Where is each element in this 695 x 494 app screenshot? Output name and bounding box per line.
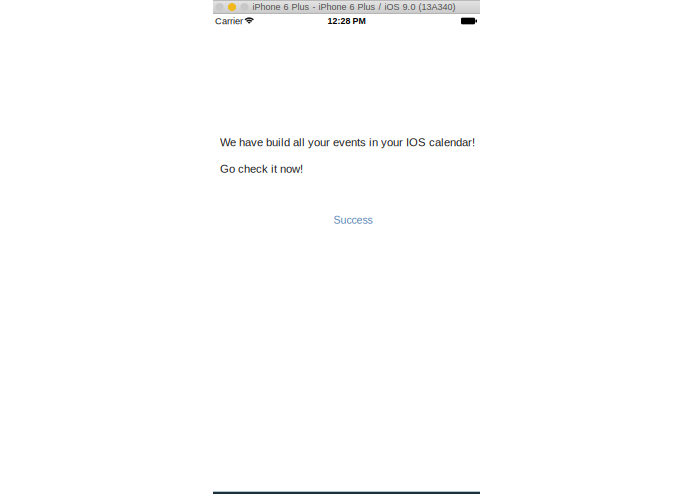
staticText: We have build all your events in your IO… [220, 136, 475, 149]
staticText: Carrier [215, 16, 243, 26]
button[interactable]: Minimize window [228, 3, 236, 11]
button[interactable]: Zoom window [240, 3, 248, 11]
button[interactable]: Close window [215, 3, 223, 11]
staticText: 12:28 PM [327, 16, 365, 26]
staticText: Go check it now! [220, 163, 303, 175]
staticText: iPhone 6 Plus - iPhone 6 Plus / iOS 9.0 … [252, 2, 455, 12]
staticText: Success [333, 214, 372, 226]
button[interactable]: Success [333, 214, 372, 226]
